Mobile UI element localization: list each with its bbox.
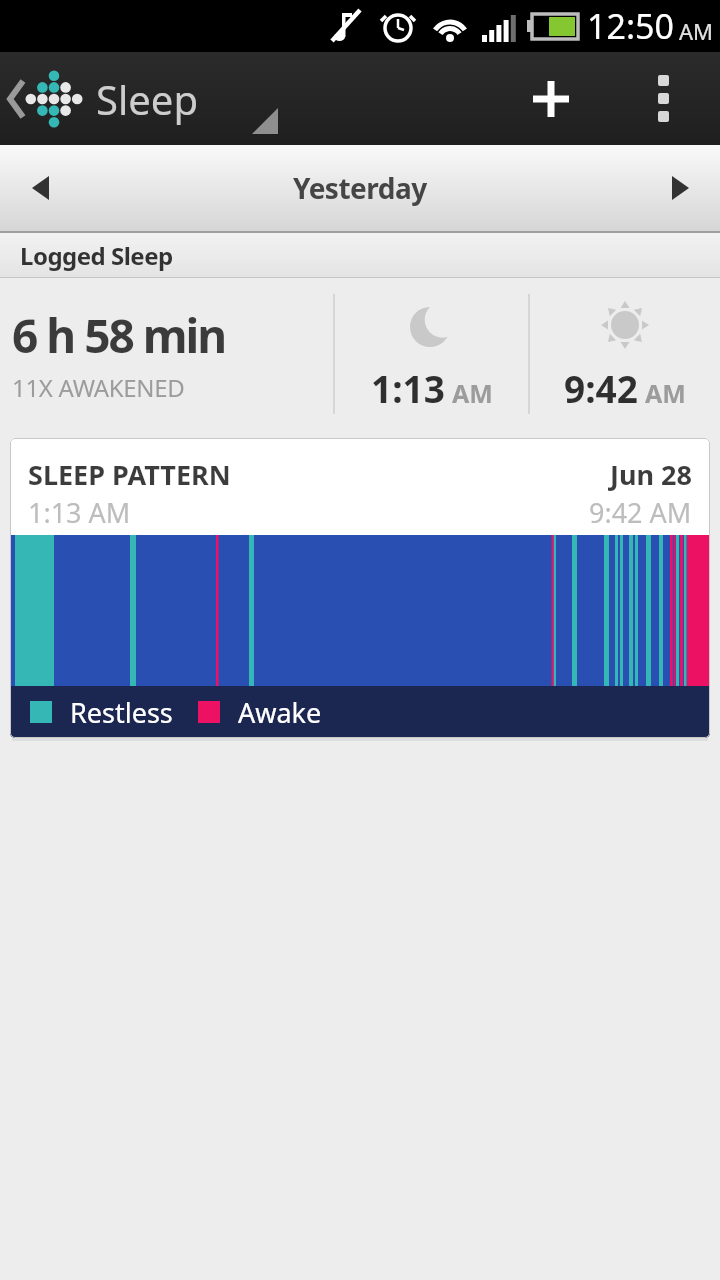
staticText: SLEEP PATTERN	[28, 456, 231, 493]
staticText: 1:13	[371, 363, 445, 413]
staticText: Yesterday	[293, 169, 427, 207]
staticText: 6 h 58 min	[12, 304, 226, 367]
staticText: Awake	[238, 694, 322, 731]
staticText: Sleep	[96, 72, 198, 126]
staticText: 11X AWAKENED	[12, 371, 185, 404]
staticText: Jun 28	[610, 456, 692, 493]
button[interactable]: SLEEP PATTERN	[10, 438, 710, 738]
staticText: Logged Sleep	[20, 239, 173, 272]
staticText: 12:50	[587, 3, 674, 49]
button[interactable]	[640, 145, 720, 231]
button[interactable]	[639, 52, 689, 145]
staticText: 9:42	[564, 363, 638, 413]
button[interactable]	[0, 145, 80, 231]
staticText: AM	[452, 376, 493, 410]
staticText: AM	[679, 16, 714, 46]
button[interactable]	[516, 52, 586, 145]
button[interactable]: Sleep	[6, 52, 214, 145]
staticText: AM	[645, 376, 686, 410]
staticText: Restless	[70, 694, 173, 731]
staticText: 1:13 AM	[28, 494, 131, 531]
staticText: 9:42 AM	[589, 494, 692, 531]
